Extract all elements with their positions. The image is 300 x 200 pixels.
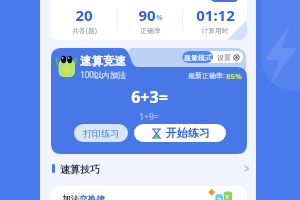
staticText: 正确率 xyxy=(140,26,161,35)
staticText: 85% xyxy=(226,71,242,81)
button[interactable]: 加法 xyxy=(51,186,247,200)
button[interactable]: 设置 xyxy=(213,51,243,63)
button[interactable]: 01:12 xyxy=(182,0,247,40)
staticText: 打印练习 xyxy=(83,128,119,139)
button[interactable]: 20 xyxy=(51,0,117,40)
button[interactable]: 速算技巧 xyxy=(40,160,256,178)
button[interactable]: 题量模式 xyxy=(182,51,213,63)
staticText: 100以内加法 xyxy=(80,69,126,80)
staticText: 1+9= xyxy=(139,111,159,123)
staticText: 设置 xyxy=(217,53,231,62)
button[interactable]: 打印练习 xyxy=(74,124,128,142)
staticText: 90 xyxy=(138,5,156,25)
staticText: 共答(题) xyxy=(72,26,97,35)
staticText: 开始练习 xyxy=(166,126,210,140)
staticText: 加法 xyxy=(62,194,79,200)
staticText: 题量模式 xyxy=(184,53,212,62)
staticText: 6+3= xyxy=(131,86,168,108)
staticText: 速算竞速 xyxy=(80,54,126,68)
button[interactable]: 90 xyxy=(117,0,183,40)
staticText: % xyxy=(156,13,163,23)
staticText: 20 xyxy=(75,5,93,25)
staticText: 速算技巧 xyxy=(60,163,100,176)
staticText: 01:12 xyxy=(196,5,235,25)
staticText: 交换律 xyxy=(79,194,105,200)
button[interactable]: 开始练习 xyxy=(134,124,226,142)
staticText: 7 xyxy=(225,193,229,200)
staticText: 计算用时 xyxy=(201,26,229,35)
staticText: 2 xyxy=(217,196,221,200)
staticText: 最新正确率: xyxy=(188,71,225,81)
